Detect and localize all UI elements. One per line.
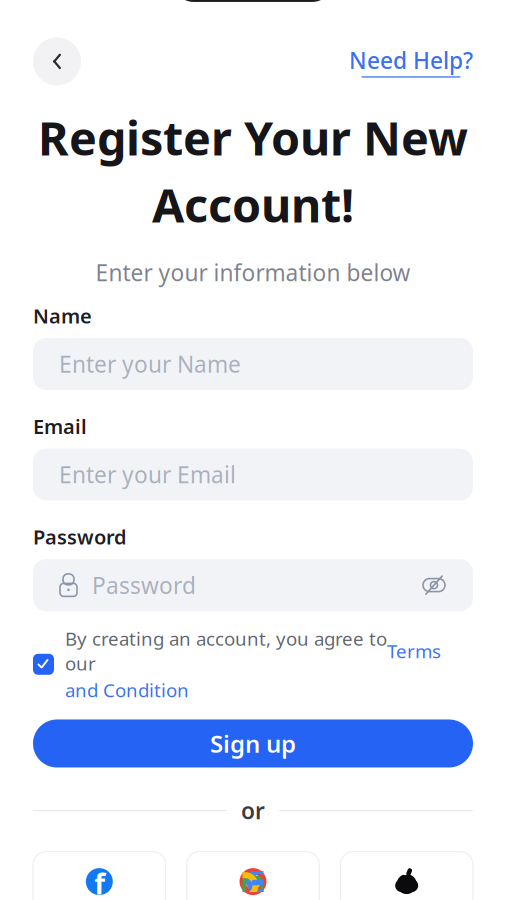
- button[interactable]: Sign up: [33, 719, 473, 767]
- staticText: and Condition: [65, 678, 189, 702]
- staticText: Password: [92, 570, 196, 600]
- button[interactable]: Enter your Name: [33, 338, 473, 390]
- staticText: Name: [33, 302, 92, 329]
- staticText: or: [241, 795, 265, 826]
- staticText: Terms: [387, 638, 441, 663]
- button[interactable]: Sign up with Apple: [340, 852, 473, 900]
- staticText: Enter your Email: [59, 459, 236, 490]
- staticText: Need Help?: [349, 45, 473, 75]
- button[interactable]: Need Help?: [349, 45, 473, 78]
- button[interactable]: Enter your Email: [33, 449, 473, 501]
- staticText: f: [94, 865, 105, 900]
- staticText: Email: [33, 413, 87, 440]
- staticText: Enter your information below: [95, 257, 410, 287]
- button[interactable]: Sign up with Facebook: [33, 852, 166, 900]
- button[interactable]: Sign up with Google: [187, 852, 319, 900]
- staticText: Sign up: [210, 728, 296, 759]
- staticText: Account!: [152, 173, 354, 235]
- staticText: By creating an account, you agree to our: [65, 626, 387, 676]
- button[interactable]: Show password: [417, 568, 451, 602]
- staticText: Register Your New: [38, 106, 468, 168]
- button[interactable]: Agree to terms: [33, 654, 54, 675]
- button[interactable]: Back: [33, 37, 81, 85]
- staticText: Password: [33, 524, 127, 550]
- staticText: Enter your Name: [59, 349, 241, 379]
